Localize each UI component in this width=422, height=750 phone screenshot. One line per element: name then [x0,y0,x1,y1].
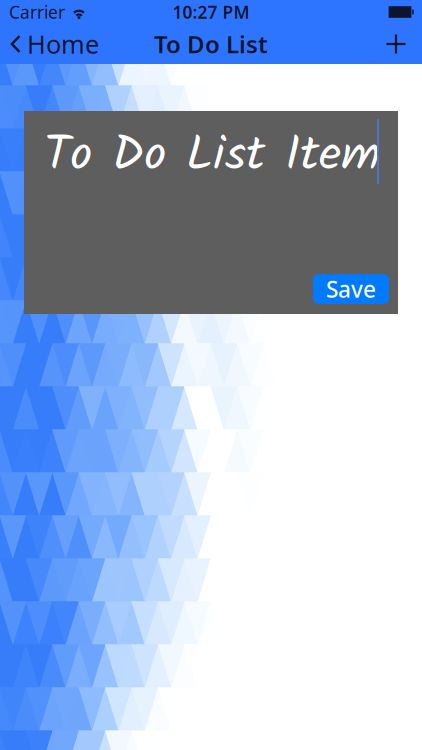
staticText: 10:27 PM [172,0,249,23]
staticText: To Do List Item [44,117,380,196]
staticText: Save [326,274,376,304]
staticText: Home [27,27,99,61]
button[interactable]: Save [313,274,389,304]
button[interactable]: Add [385,28,422,60]
button[interactable]: Home [0,22,99,66]
staticText: Carrier [9,0,65,23]
staticText: To Do List [154,28,268,60]
